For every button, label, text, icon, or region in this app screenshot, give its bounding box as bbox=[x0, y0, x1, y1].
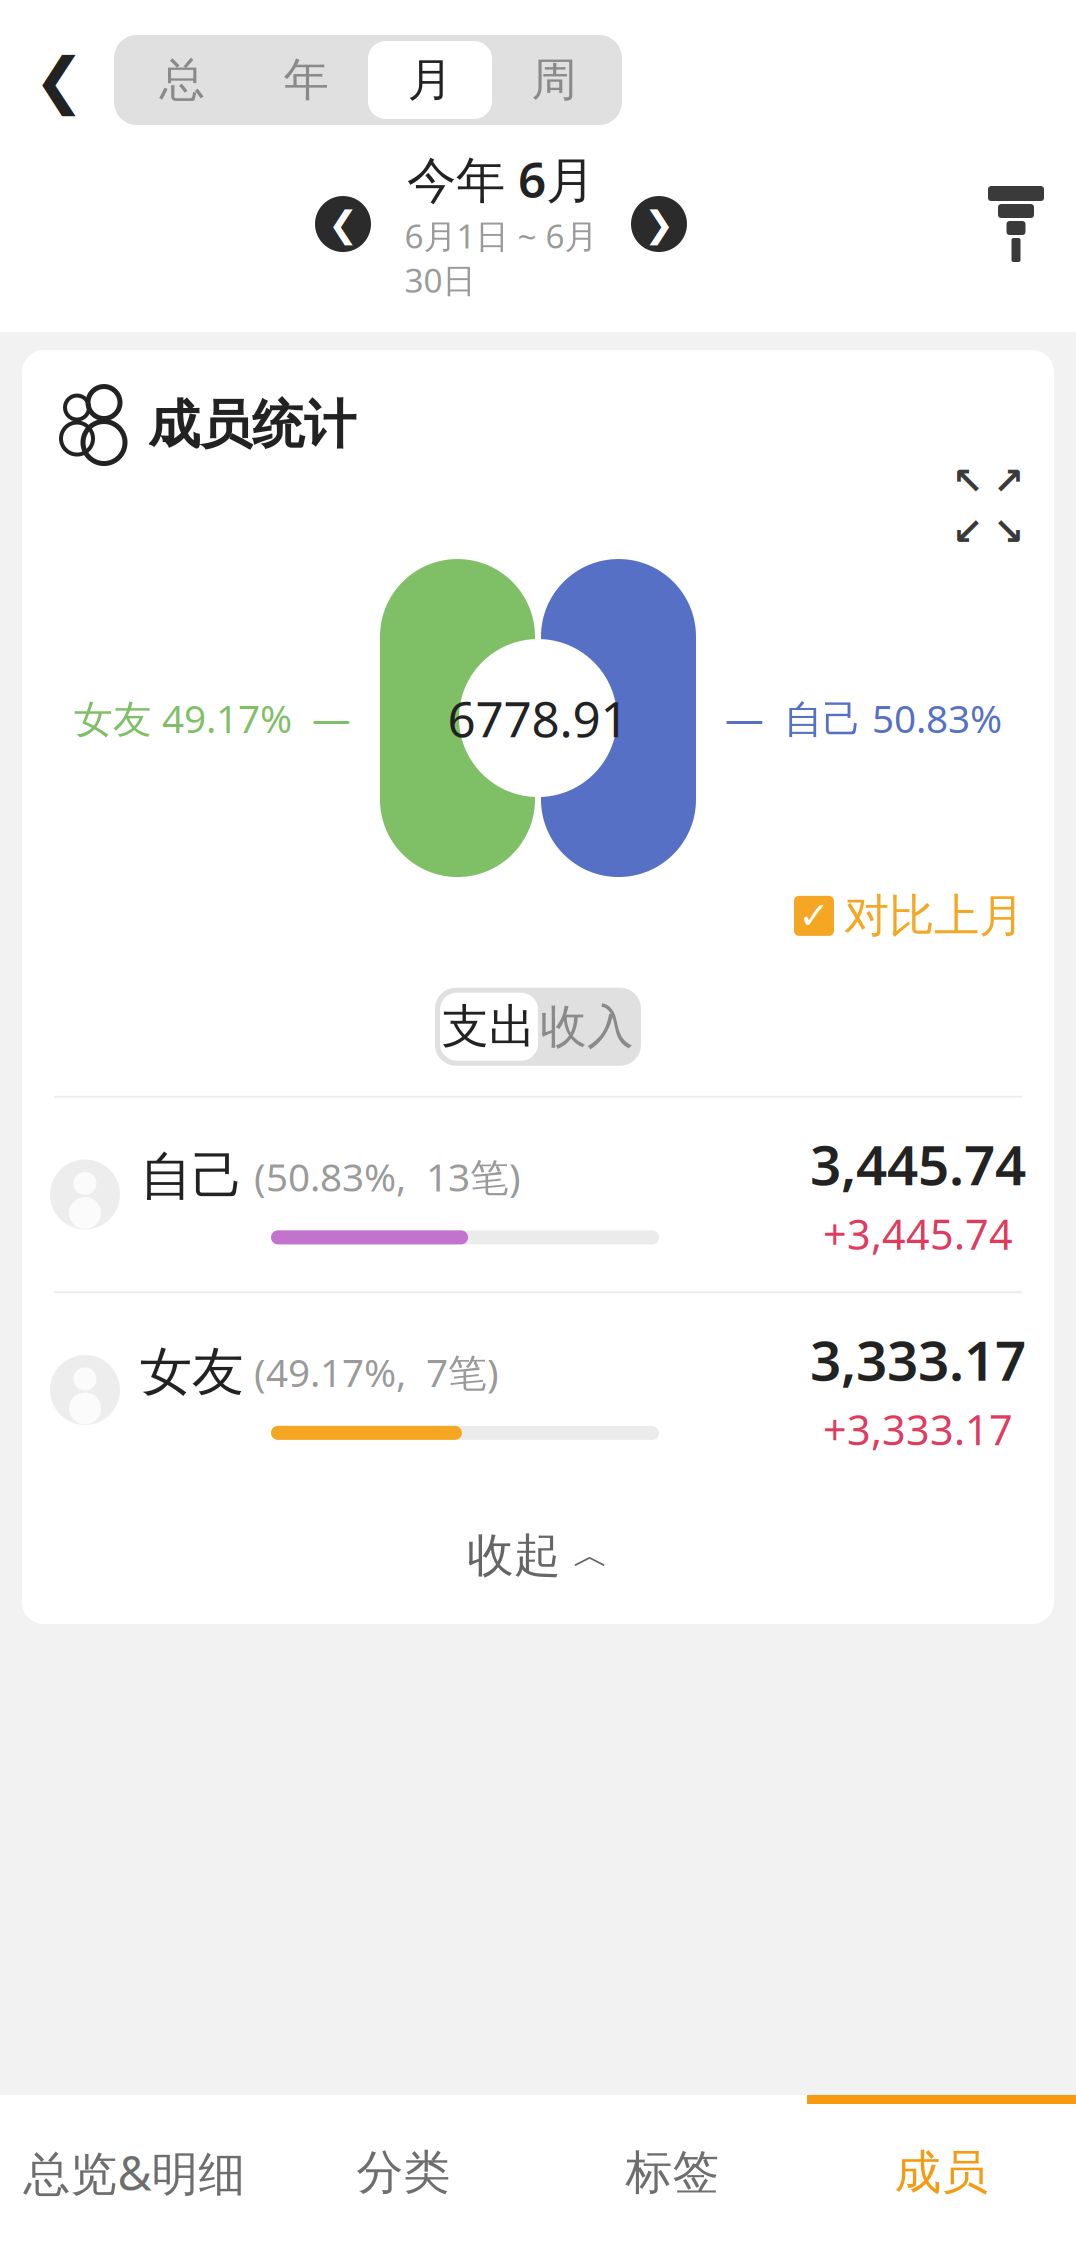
staticText: 3,445.74 bbox=[810, 1128, 1026, 1200]
staticText: 对比上月 bbox=[844, 888, 1024, 944]
staticText: 月 bbox=[407, 52, 452, 108]
staticText: +3,333.17 bbox=[823, 1402, 1013, 1457]
button[interactable]: 年 bbox=[244, 41, 368, 119]
staticText: 成员 bbox=[894, 2144, 988, 2201]
staticText: 支出 bbox=[442, 998, 536, 1055]
staticText: ❮ bbox=[328, 204, 358, 244]
button[interactable]: 自己 bbox=[22, 1098, 1054, 1291]
staticText: 年 bbox=[283, 52, 328, 108]
button[interactable]: 收入 bbox=[538, 993, 636, 1061]
button[interactable]: Next period bbox=[616, 181, 702, 267]
staticText: 总 bbox=[159, 52, 204, 108]
staticText: 总览&明细 bbox=[23, 2141, 245, 2203]
staticText: +3,445.74 bbox=[823, 1206, 1013, 1261]
staticText: (49.17%, 7笔) bbox=[244, 1346, 499, 1398]
button[interactable]: 成员 bbox=[807, 2095, 1076, 2241]
staticText: ↗ bbox=[993, 460, 1024, 502]
staticText: ❮ bbox=[33, 45, 84, 115]
button[interactable]: 月 bbox=[368, 41, 492, 119]
button[interactable]: 总览&明细 bbox=[0, 2095, 269, 2241]
staticText: ↘ bbox=[993, 510, 1024, 552]
staticText: 分类 bbox=[356, 2144, 450, 2201]
staticText: 收起 bbox=[467, 1527, 561, 1584]
button[interactable]: Expand chart bbox=[946, 464, 1030, 548]
staticText: 3,333.17 bbox=[810, 1323, 1026, 1396]
staticText: 周 bbox=[531, 52, 576, 108]
staticText: 标签 bbox=[625, 2144, 719, 2201]
staticText: 自己 bbox=[140, 1144, 244, 1208]
staticText: 6月1日 ~ 6月30日 bbox=[404, 213, 597, 302]
staticText: ︿ bbox=[573, 1533, 609, 1577]
staticText: ✓ bbox=[798, 895, 829, 937]
button[interactable]: 标签 bbox=[538, 2095, 807, 2241]
button[interactable]: ✓ bbox=[794, 888, 1024, 944]
button[interactable]: Filter bbox=[966, 176, 1066, 272]
staticText: 女友 49.17% — bbox=[74, 692, 351, 744]
staticText: 收入 bbox=[540, 998, 634, 1055]
staticText: 6778.91 bbox=[447, 685, 628, 751]
staticText: ↖ bbox=[952, 460, 983, 502]
staticText: (50.83%, 13笔) bbox=[244, 1151, 521, 1202]
button[interactable]: 总 bbox=[120, 41, 244, 119]
button[interactable]: 收起 bbox=[22, 1487, 1054, 1624]
button[interactable]: 分类 bbox=[269, 2095, 538, 2241]
button[interactable]: Back bbox=[4, 28, 114, 132]
button[interactable]: 支出 bbox=[440, 993, 538, 1061]
staticText: — 自己 50.83% bbox=[725, 692, 1002, 744]
staticText: 今年 6月 bbox=[407, 146, 595, 211]
button[interactable]: Previous period bbox=[300, 181, 386, 267]
staticText: 女友 bbox=[140, 1340, 244, 1404]
button[interactable]: 周 bbox=[492, 41, 616, 119]
staticText: 成员统计 bbox=[148, 393, 356, 457]
staticText: ❯ bbox=[644, 204, 674, 244]
staticText: ↙ bbox=[952, 510, 983, 552]
button[interactable]: 女友 bbox=[22, 1293, 1054, 1487]
